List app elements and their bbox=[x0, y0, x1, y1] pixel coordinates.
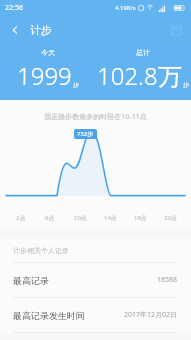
staticText: 4.19K/s bbox=[115, 4, 136, 12]
staticText: 我走路步数最多的时段在10-11点 bbox=[0, 112, 191, 122]
staticText: 今天 bbox=[41, 48, 55, 57]
staticText: 2点 bbox=[16, 214, 26, 222]
staticText: 102.8万 bbox=[97, 59, 182, 92]
staticText: 计步 bbox=[30, 23, 52, 37]
staticText: 14点 bbox=[104, 214, 117, 222]
staticText: 计步相关个人记录 bbox=[13, 246, 69, 255]
button[interactable]: 最高记录发生时间 bbox=[0, 298, 191, 332]
staticText: 18点 bbox=[134, 214, 147, 222]
staticText: 步 bbox=[73, 81, 79, 89]
staticText: 最高记录发生时间 bbox=[13, 310, 85, 321]
staticText: 6点 bbox=[45, 214, 55, 222]
staticText: 18588 bbox=[157, 275, 178, 285]
staticText: 10点 bbox=[74, 214, 87, 222]
staticText: 752步 bbox=[77, 130, 94, 138]
button[interactable]: Settings bbox=[161, 15, 191, 45]
staticText: 22:56 bbox=[5, 3, 23, 13]
staticText: 总计 bbox=[136, 48, 150, 57]
button[interactable]: Back bbox=[0, 15, 30, 45]
staticText: 22点 bbox=[164, 214, 177, 222]
staticText: 1999 bbox=[17, 59, 72, 92]
staticText: 最高记录 bbox=[13, 275, 49, 286]
staticText: 2017年12月02日 bbox=[124, 310, 178, 320]
staticText: 步 bbox=[183, 81, 189, 89]
button[interactable]: 最高记录 bbox=[0, 263, 191, 297]
